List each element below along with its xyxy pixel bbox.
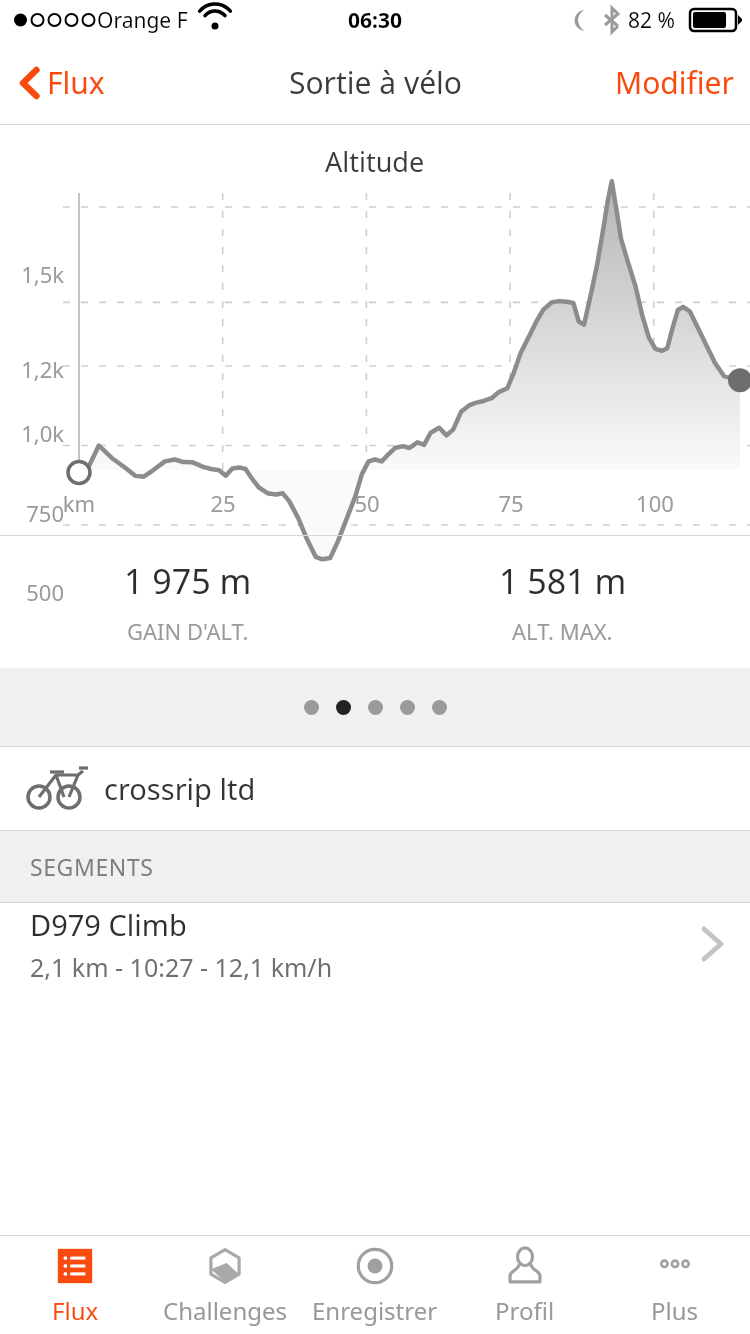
staticText: 750: [0, 498, 64, 528]
button[interactable]: Challenges: [150, 1236, 300, 1334]
staticText: Altitude: [325, 143, 425, 180]
staticText: Plus: [651, 1294, 699, 1327]
button[interactable]: Bike: [0, 747, 750, 830]
staticText: 2,1 km - 10:27 - 12,1 km/h: [30, 950, 333, 984]
staticText: Flux: [47, 62, 105, 103]
staticText: GAIN D'ALT.: [127, 616, 249, 646]
staticText: crossrip ltd: [104, 769, 256, 808]
button[interactable]: Plus: [600, 1236, 750, 1334]
staticText: 1,2k: [0, 354, 64, 384]
staticText: 500: [0, 577, 64, 607]
staticText: Sortie à vélo: [289, 62, 462, 103]
button[interactable]: 1 975 m: [0, 536, 375, 668]
staticText: 06:30: [348, 6, 402, 35]
staticText: 25: [193, 488, 253, 518]
staticText: D979 Climb: [30, 905, 187, 944]
button[interactable]: D979 Climb: [0, 903, 750, 985]
button[interactable]: 1 581 m: [375, 536, 750, 668]
staticText: 1,0k: [0, 418, 64, 448]
button[interactable]: Profil: [450, 1236, 600, 1334]
staticText: Orange F: [97, 6, 188, 35]
staticText: ALT. MAX.: [512, 616, 613, 646]
other: Bike: [26, 769, 82, 809]
staticText: km: [49, 488, 109, 518]
button[interactable]: Flux: [14, 54, 111, 111]
staticText: 1,5k: [0, 259, 64, 289]
staticText: Challenges: [163, 1294, 288, 1327]
button[interactable]: Enregistrer: [300, 1236, 450, 1334]
staticText: 100: [625, 488, 685, 518]
staticText: 75: [481, 488, 541, 518]
staticText: SEGMENTS: [30, 851, 154, 882]
button[interactable]: Modifier: [599, 52, 750, 113]
staticText: 50: [337, 488, 397, 518]
staticText: Enregistrer: [312, 1294, 438, 1327]
staticText: 1 581 m: [499, 558, 627, 604]
button[interactable]: Flux: [0, 1236, 150, 1334]
staticText: 82 %: [628, 6, 675, 35]
staticText: 1 975 m: [124, 558, 252, 604]
staticText: Flux: [52, 1294, 99, 1327]
staticText: Profil: [495, 1294, 555, 1327]
